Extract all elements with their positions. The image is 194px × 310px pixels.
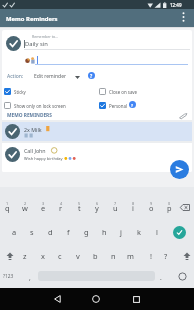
button[interactable]: l <box>147 225 167 239</box>
button[interactable]: 1 <box>0 196 17 210</box>
staticText: p <box>167 203 172 213</box>
staticText: 2x Milk <box>24 126 42 133</box>
button[interactable]: 8 <box>123 196 143 210</box>
button[interactable]: 2x Milk <box>2 122 192 141</box>
button[interactable]: s <box>22 225 42 239</box>
staticText: Action: <box>7 73 24 80</box>
staticText: Wish happy birthday <box>24 156 63 161</box>
staticText: 9 <box>150 201 153 206</box>
staticText: i <box>132 203 134 213</box>
staticText: 4 <box>60 201 63 206</box>
button[interactable]: b <box>85 249 105 263</box>
staticText: . <box>160 273 162 282</box>
button[interactable] <box>182 251 191 260</box>
staticText: Remember to... <box>32 34 59 39</box>
button[interactable]: r <box>51 201 71 215</box>
button[interactable] <box>177 272 187 281</box>
staticText: b <box>93 251 98 261</box>
button[interactable]: Sticky <box>4 87 94 96</box>
staticText: 3 <box>42 201 45 206</box>
button[interactable]: 9 <box>141 196 161 210</box>
staticText: w <box>22 203 28 213</box>
button[interactable]: a <box>4 225 24 239</box>
button[interactable]: ! <box>141 249 161 263</box>
staticText: MEMO REMINDERS <box>7 112 52 119</box>
button[interactable] <box>179 203 191 212</box>
button[interactable] <box>88 291 104 307</box>
staticText: ? <box>164 251 168 261</box>
button[interactable] <box>170 160 189 179</box>
staticText: c <box>58 251 62 261</box>
staticText: o <box>149 203 154 213</box>
button[interactable]: . <box>151 270 171 284</box>
button[interactable] <box>174 9 192 25</box>
staticText: ? <box>131 102 134 108</box>
button[interactable]: j <box>111 225 131 239</box>
button[interactable]: t <box>69 201 89 215</box>
staticText: j <box>120 227 122 237</box>
staticText: 0 <box>168 201 171 206</box>
button[interactable]: ? <box>156 249 176 263</box>
button[interactable]: p <box>159 201 179 215</box>
button[interactable]: Call John <box>2 143 192 172</box>
button[interactable]: 2 <box>15 196 35 210</box>
staticText: 6 <box>96 201 99 206</box>
button[interactable]: h <box>94 225 114 239</box>
staticText: y <box>95 203 99 213</box>
button[interactable]: f <box>58 225 78 239</box>
staticText: s <box>30 227 34 237</box>
button[interactable]: n <box>103 249 123 263</box>
staticText: q <box>5 203 10 213</box>
staticText: ! <box>150 251 152 261</box>
staticText: Sticky <box>14 89 26 95</box>
button[interactable]: Personal <box>99 101 189 110</box>
staticText: e <box>41 203 46 213</box>
button[interactable]: v <box>68 249 88 263</box>
button[interactable]: 4 <box>51 196 71 210</box>
button[interactable]: 7 <box>105 196 125 210</box>
staticText: k <box>137 227 141 237</box>
button[interactable]: 6 <box>87 196 107 210</box>
button[interactable]: , <box>20 270 40 284</box>
staticText: , <box>29 273 31 282</box>
button[interactable]: m <box>120 249 140 263</box>
button[interactable]: q <box>0 201 17 215</box>
staticText: 12:49 <box>170 2 182 8</box>
staticText: f <box>67 227 70 237</box>
button[interactable] <box>128 291 144 307</box>
button[interactable] <box>49 291 65 307</box>
staticText: t <box>78 203 81 213</box>
button[interactable]: 3 <box>33 196 53 210</box>
button[interactable]: k <box>129 225 149 239</box>
button[interactable]: d <box>40 225 60 239</box>
staticText: Personal <box>109 103 128 109</box>
button[interactable]: 0 <box>159 196 179 210</box>
button[interactable]: z <box>15 249 35 263</box>
button[interactable]: o <box>141 201 161 215</box>
button[interactable] <box>5 251 14 260</box>
button[interactable] <box>173 226 186 239</box>
staticText: Daily sin <box>25 40 48 48</box>
button[interactable]: Close on save <box>99 87 189 96</box>
staticText: g <box>84 227 89 237</box>
staticText: n <box>111 251 116 261</box>
button[interactable]: 5 <box>69 196 89 210</box>
button[interactable]: Show only on lock screen <box>4 101 94 110</box>
button[interactable]: e <box>33 201 53 215</box>
button[interactable]: i <box>123 201 143 215</box>
button[interactable]: w <box>15 201 35 215</box>
staticText: Edit reminder <box>34 73 67 80</box>
button[interactable]: c <box>50 249 70 263</box>
button[interactable]: y <box>87 201 107 215</box>
staticText: Close on save <box>109 89 138 95</box>
staticText: d <box>48 227 53 237</box>
staticText: ? <box>90 73 93 79</box>
staticText: ?123 <box>3 273 14 280</box>
button[interactable]: x <box>33 249 53 263</box>
button[interactable]: Edit reminder <box>33 71 89 82</box>
staticText: a <box>12 227 17 237</box>
button[interactable]: u <box>105 201 125 215</box>
button[interactable]: g <box>76 225 96 239</box>
staticText: l <box>156 227 158 237</box>
